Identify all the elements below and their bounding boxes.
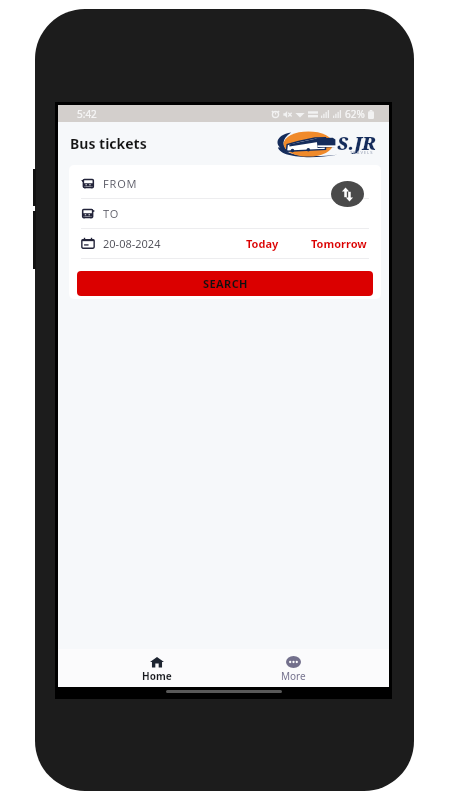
staticText: 62% (345, 107, 365, 121)
staticText: Tomorrow (311, 236, 367, 251)
button[interactable]: TO (81, 199, 369, 228)
staticText: 20-08-2024 (103, 236, 161, 251)
button[interactable]: SEARCH (77, 271, 373, 296)
staticText: Today (246, 236, 279, 251)
button[interactable]: More (272, 649, 314, 687)
button[interactable]: Swap source and destination (331, 181, 364, 207)
staticText: 5:42 (77, 107, 97, 121)
staticText: Bus tickets (70, 134, 147, 153)
button[interactable]: Tomorrow (309, 232, 369, 255)
staticText: FROM (103, 176, 138, 191)
staticText: SEARCH (203, 276, 248, 291)
staticText: More (281, 669, 306, 683)
button[interactable]: Today (244, 232, 281, 255)
staticText: T R A V E L S (350, 150, 373, 155)
staticText: TO (103, 206, 120, 221)
staticText: S.JR (337, 131, 376, 156)
button[interactable]: Home (136, 649, 178, 687)
staticText: Home (142, 669, 172, 683)
button[interactable]: FROM (81, 169, 369, 198)
button[interactable]: 20-08-2024 (81, 236, 161, 251)
